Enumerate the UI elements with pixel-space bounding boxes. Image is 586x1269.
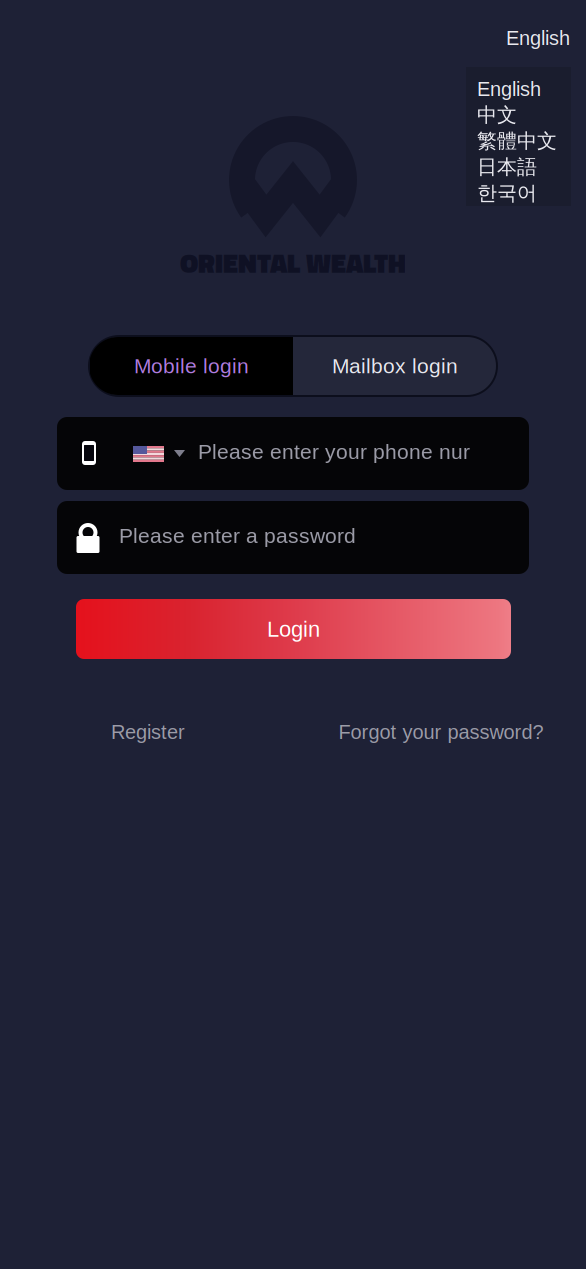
button[interactable]: 日本語 — [477, 154, 573, 180]
button[interactable]: 한국어 — [477, 180, 573, 206]
button[interactable]: Register — [88, 716, 208, 748]
button[interactable]: Mailbox login — [293, 336, 497, 396]
staticText: ORIENTAL WEALTH — [180, 242, 406, 283]
staticText: Mobile login — [134, 354, 249, 378]
staticText: English — [477, 78, 541, 100]
staticText: 中文 — [477, 102, 517, 128]
button[interactable]: 繁體中文 — [477, 128, 573, 154]
button[interactable]: Forgot your password? — [321, 716, 561, 748]
staticText: 繁體中文 — [477, 128, 557, 154]
staticText: 日本語 — [477, 154, 537, 180]
staticText: Forgot your password? — [338, 721, 543, 743]
staticText: Please enter your phone nur — [198, 440, 470, 463]
staticText: Login — [267, 617, 320, 641]
button[interactable]: Login — [76, 599, 511, 659]
staticText: Register — [111, 721, 185, 743]
staticText: Mailbox login — [332, 354, 458, 378]
button[interactable]: English — [477, 76, 573, 102]
button[interactable]: 中文 — [477, 102, 573, 128]
button[interactable]: Mobile login — [90, 337, 293, 395]
staticText: 한국어 — [477, 180, 537, 206]
staticText: English — [506, 27, 570, 49]
button[interactable]: English — [470, 21, 570, 55]
staticText: Please enter a password — [119, 524, 356, 547]
